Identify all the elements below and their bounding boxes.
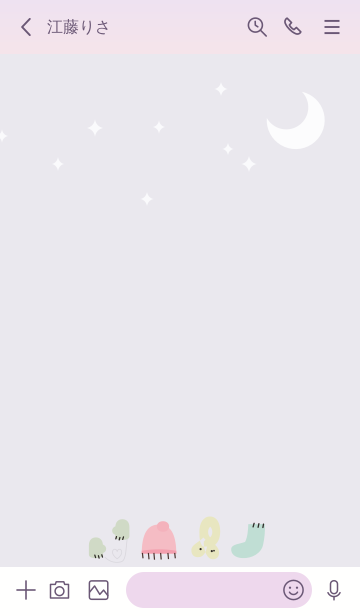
button[interactable]: Call [276,4,310,48]
button[interactable]: Message input [126,572,312,608]
staticText: 江藤りさ [47,17,111,37]
button[interactable]: Back [11,5,41,49]
button[interactable]: Add [9,568,43,612]
button[interactable]: Photos [82,568,116,612]
button[interactable]: 江藤りさ [47,5,117,49]
button[interactable]: Voice message [319,568,349,612]
button[interactable]: Camera [43,568,77,612]
button[interactable]: Search history [241,6,275,50]
button[interactable]: Menu [315,5,349,49]
